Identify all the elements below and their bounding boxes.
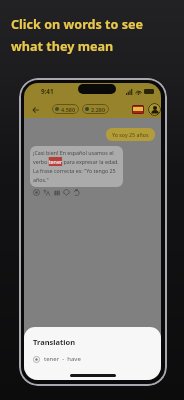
- button[interactable]: Translate: [42, 188, 51, 197]
- button[interactable]: 2.280: [85, 104, 106, 114]
- staticText: Click on words to see: [11, 16, 144, 33]
- button[interactable]: Copy: [72, 188, 81, 197]
- staticText: Yo soy 25 años: [112, 131, 149, 138]
- button[interactable]: Play audio: [32, 188, 41, 197]
- button[interactable]: Save: [62, 188, 71, 197]
- staticText: tener - have: [44, 355, 81, 363]
- staticText: 2.280: [91, 106, 106, 113]
- staticText: 9:41: [41, 87, 54, 96]
- button[interactable]: 4.580: [55, 104, 76, 114]
- staticText: Translation: [33, 337, 76, 347]
- button[interactable]: Profile: [148, 103, 161, 116]
- button[interactable]: Back: [29, 103, 42, 116]
- button[interactable]: Language: [132, 105, 144, 114]
- staticText: 4.580: [61, 106, 76, 113]
- button[interactable]: tener - have: [33, 355, 81, 363]
- staticText: ¡Casi bien! En español usamos el verbo t…: [33, 149, 120, 184]
- staticText: what they mean: [11, 38, 114, 55]
- button[interactable]: Grammar: [52, 188, 61, 197]
